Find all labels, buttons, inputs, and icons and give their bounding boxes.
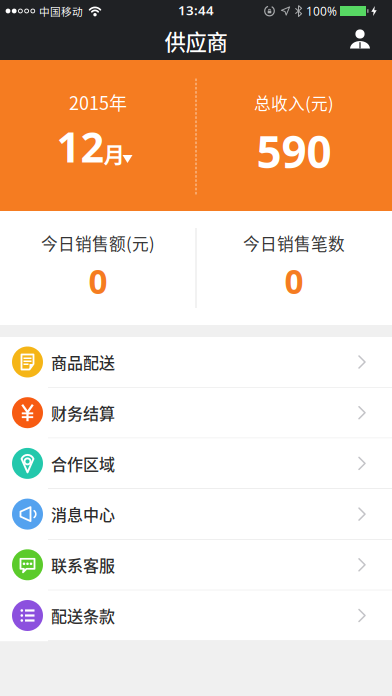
staticText: 590	[256, 122, 331, 180]
staticText: 100%	[306, 3, 337, 19]
staticText: 供应商	[164, 26, 227, 56]
button[interactable]: 我的账户	[349, 22, 392, 60]
button[interactable]: 商品配送	[0, 337, 392, 388]
staticText: 配送条款	[51, 604, 115, 627]
staticText: 财务结算	[51, 401, 115, 424]
button[interactable]: 消息中心	[0, 489, 392, 540]
staticText: 13:44	[178, 1, 214, 19]
staticText: 合作区域	[51, 452, 115, 475]
button[interactable]: 配送条款	[0, 590, 392, 641]
button[interactable]: 财务结算	[0, 388, 392, 438]
staticText: 联系客服	[51, 553, 115, 576]
staticText: 消息中心	[51, 502, 115, 526]
staticText: 12	[56, 119, 104, 174]
staticText: 0	[284, 259, 303, 303]
staticText: 今日销售笔数	[243, 231, 345, 255]
button[interactable]: 联系客服	[0, 540, 392, 590]
staticText: 0	[88, 259, 107, 303]
staticText: 2015年	[69, 89, 127, 115]
staticText: 总收入(元)	[254, 91, 334, 115]
staticText: 月	[103, 138, 124, 169]
staticText: 今日销售额(元)	[41, 231, 155, 255]
button[interactable]: 合作区域	[0, 438, 392, 489]
staticText: 中国移动	[39, 3, 83, 19]
staticText: 商品配送	[51, 350, 115, 374]
